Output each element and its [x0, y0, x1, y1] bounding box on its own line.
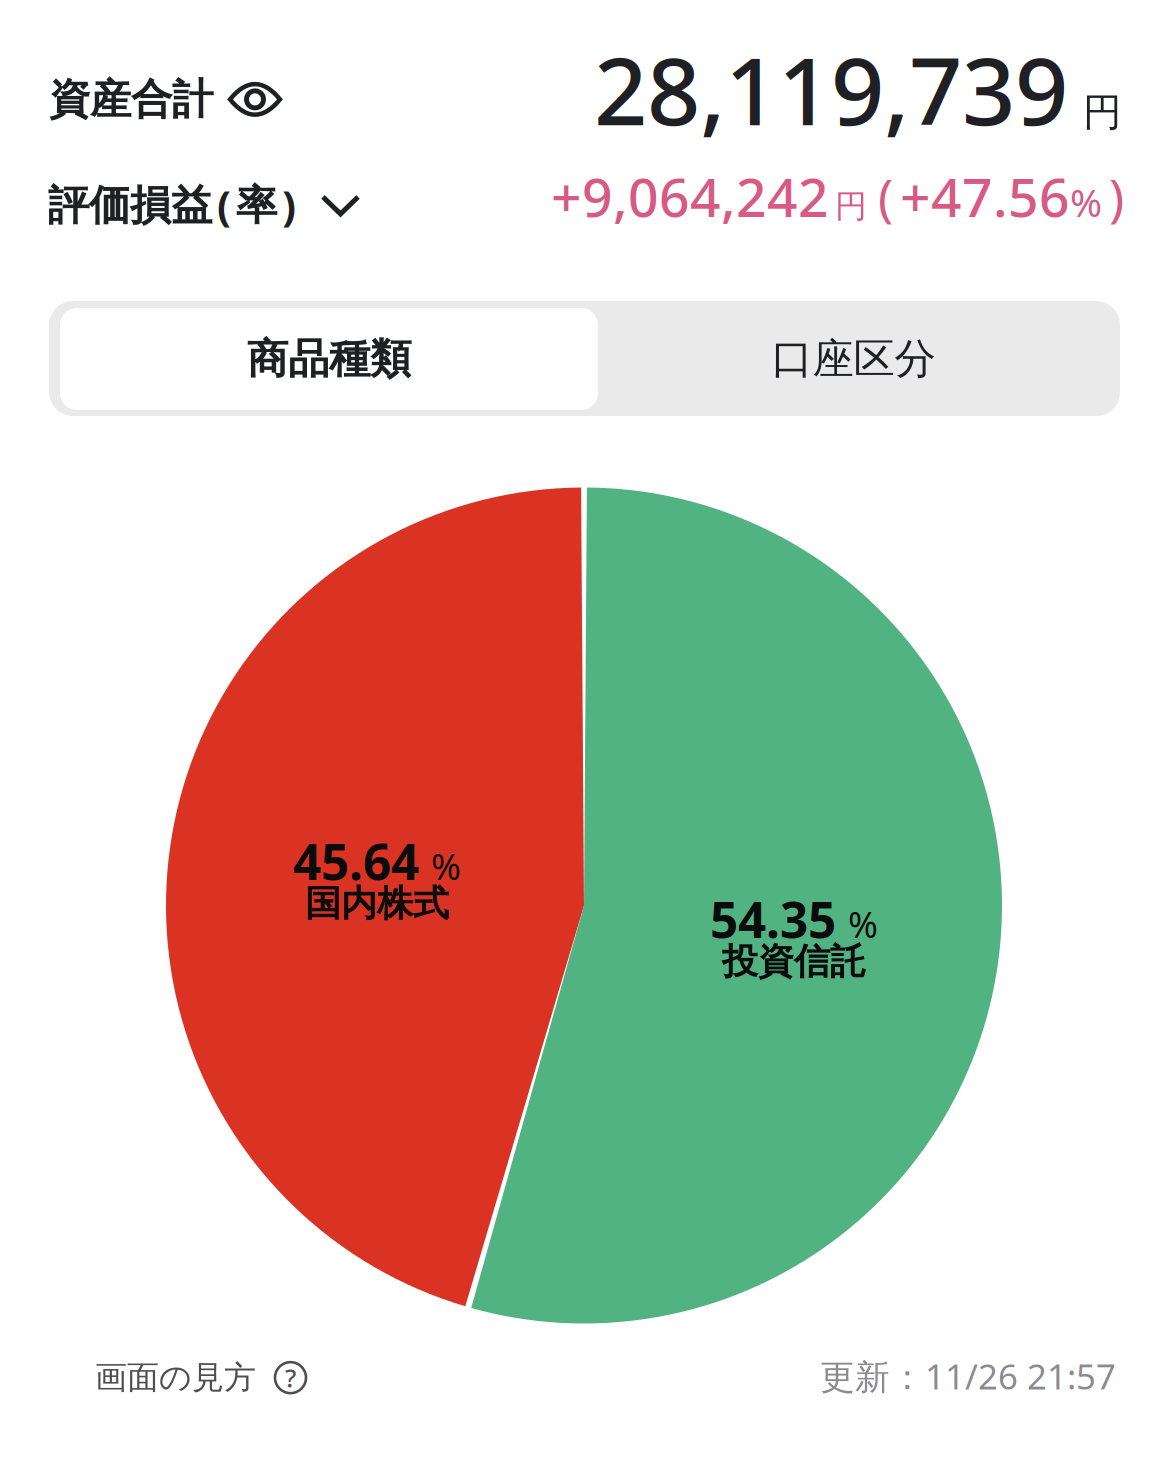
- staticText: 更新：11/26 21:57: [820, 1353, 1116, 1399]
- button[interactable]: 商品種類: [60, 308, 598, 410]
- staticText: ): [282, 178, 296, 233]
- staticText: ): [1109, 164, 1124, 231]
- staticText: 口座区分: [771, 334, 935, 384]
- staticText: 54.35: [710, 886, 836, 951]
- staticText: 画面の見方: [95, 1358, 256, 1397]
- staticText: 国内株式: [305, 881, 449, 926]
- staticText: ?: [285, 1361, 296, 1394]
- staticText: 円: [1083, 89, 1122, 136]
- button[interactable]: 資産合計 — 金額の表示を切り替え: [49, 74, 280, 125]
- staticText: 評価損益: [48, 180, 212, 231]
- staticText: %: [848, 900, 878, 948]
- staticText: 投資信託: [722, 939, 866, 984]
- staticText: (: [878, 164, 893, 231]
- button[interactable]: 口座区分: [598, 308, 1109, 410]
- staticText: 商品種類: [247, 334, 411, 384]
- staticText: (: [217, 178, 231, 233]
- staticText: 28,119,739: [594, 27, 1068, 151]
- staticText: +9,064,242: [551, 161, 829, 232]
- staticText: %: [1070, 176, 1102, 228]
- staticText: %: [431, 842, 461, 890]
- staticText: +47.56: [900, 161, 1070, 232]
- button[interactable]: 評価損益(率) — 表示項目を切り替え: [48, 178, 358, 233]
- staticText: 円: [835, 187, 867, 226]
- staticText: 45.64: [293, 828, 419, 893]
- button[interactable]: 画面の見方: [95, 1358, 306, 1397]
- staticText: 資産合計: [49, 74, 213, 125]
- staticText: 率: [236, 180, 277, 231]
